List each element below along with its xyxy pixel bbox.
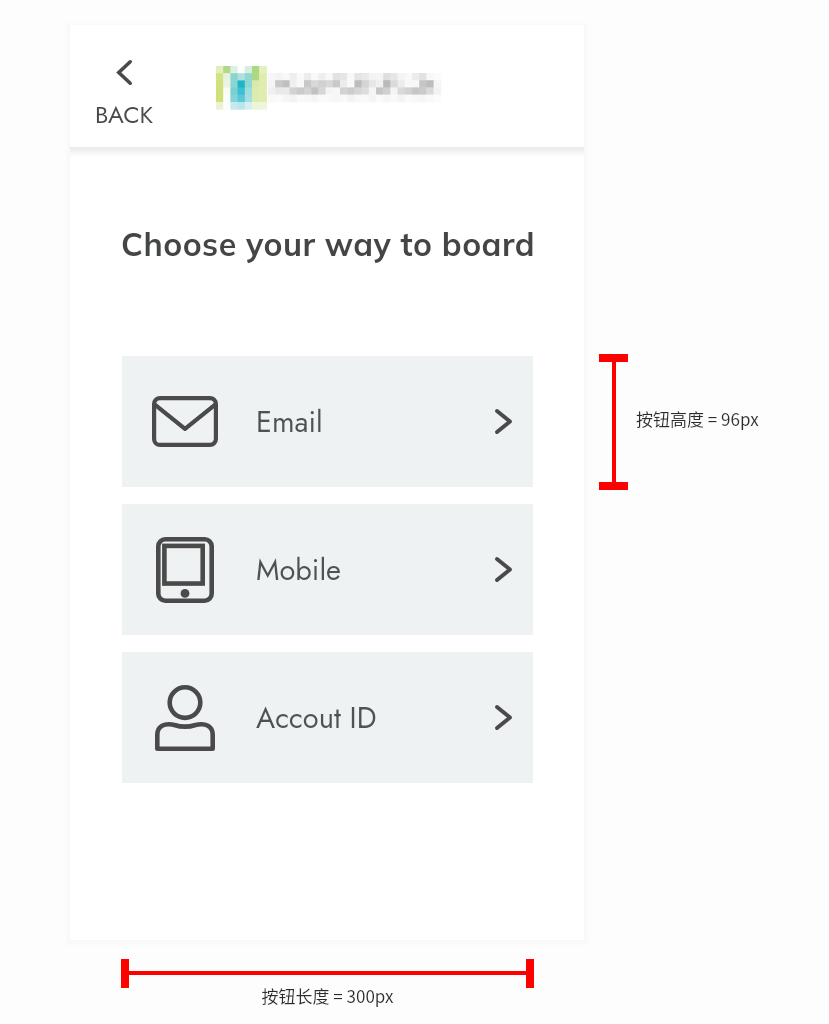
button[interactable]: Back bbox=[89, 60, 159, 132]
button[interactable]: Email bbox=[122, 356, 533, 487]
button[interactable]: Accout ID bbox=[122, 652, 533, 783]
other: Open Email bbox=[495, 409, 512, 434]
other: Open Accout ID bbox=[495, 705, 512, 730]
staticText: 按钮长度 = 300px bbox=[121, 983, 534, 1008]
button[interactable]: Mobile bbox=[122, 504, 533, 635]
staticText: Mobile bbox=[256, 549, 341, 591]
staticText: Choose your way to board bbox=[121, 224, 536, 264]
other: Open Mobile bbox=[495, 557, 512, 582]
staticText: BACK bbox=[95, 97, 154, 132]
staticText: 按钮高度 = 96px bbox=[636, 406, 759, 431]
staticText: Accout ID bbox=[256, 697, 377, 739]
staticText: Email bbox=[256, 401, 323, 443]
